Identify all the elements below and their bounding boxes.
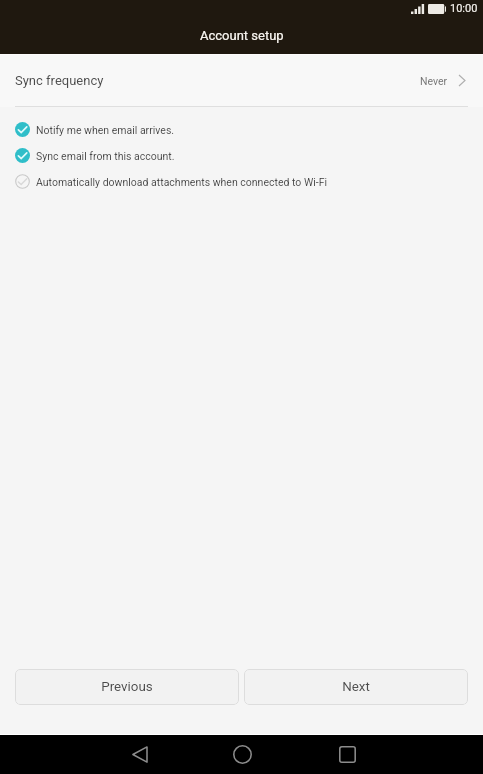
button[interactable]: Recents [319,735,375,774]
staticText: Account setup [200,28,284,43]
staticText: Automatically download attachments when … [36,176,328,188]
staticText: Sync email from this account. [36,150,175,162]
staticText: Sync frequency [15,73,104,88]
staticText: Notify me when email arrives. [36,124,175,136]
button[interactable]: Previous [15,669,239,705]
button[interactable]: Back [111,735,167,774]
button[interactable]: Home [214,735,270,774]
staticText: Never [420,75,448,87]
staticText: 10:00 [450,2,478,15]
staticText: Previous [101,679,153,695]
button[interactable]: Automatically download attachments when … [0,168,483,194]
staticText: Next [342,679,370,695]
button[interactable]: Notify me when email arrives. [0,116,483,142]
button[interactable]: Sync frequency [0,55,483,106]
button[interactable]: Next [244,669,468,705]
button[interactable]: Sync email from this account. [0,142,483,168]
